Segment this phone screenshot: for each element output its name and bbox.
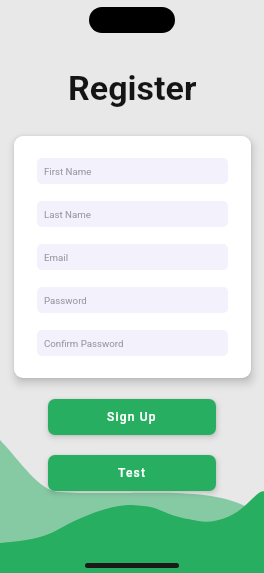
button[interactable]: Last Name <box>37 201 228 227</box>
staticText: Last Name <box>44 209 91 220</box>
other: Camera notch <box>89 7 175 33</box>
staticText: Email <box>44 252 68 263</box>
button[interactable]: First Name <box>37 158 228 184</box>
staticText: Test <box>118 466 147 480</box>
button[interactable]: Password <box>37 287 228 313</box>
button[interactable]: Email <box>37 244 228 270</box>
staticText: Password <box>44 295 87 306</box>
staticText: Register <box>68 68 197 108</box>
staticText: Sign Up <box>107 410 157 424</box>
button[interactable]: Confirm Password <box>37 330 228 356</box>
button[interactable]: Sign Up <box>48 399 216 435</box>
button[interactable]: Test <box>48 455 216 491</box>
staticText: Confirm Password <box>44 338 124 349</box>
staticText: First Name <box>44 166 92 177</box>
